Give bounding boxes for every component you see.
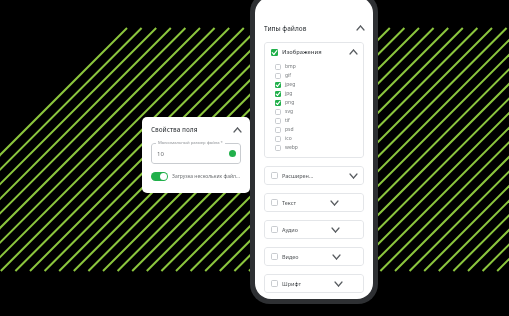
button[interactable]: svg (275, 107, 357, 116)
staticText: bmp (285, 63, 296, 70)
button[interactable]: Расширения при... (264, 166, 364, 185)
button[interactable]: jpg (275, 89, 357, 98)
button[interactable]: bmp (275, 62, 357, 71)
staticText: jpeg (285, 81, 296, 88)
staticText: Типы файлов (264, 24, 307, 33)
staticText: Текст (282, 199, 297, 206)
staticText: Загрузка нескольких файлов (172, 173, 241, 180)
staticText: Изображения (282, 48, 322, 56)
staticText: Расширения при... (282, 172, 316, 179)
button[interactable]: Видео (264, 247, 364, 266)
staticText: gif (285, 72, 292, 79)
staticText: svg (285, 108, 294, 115)
staticText: jpg (285, 90, 293, 97)
staticText: ico (285, 135, 292, 142)
button[interactable]: Изображения (271, 48, 357, 56)
button[interactable]: gif (275, 71, 357, 80)
staticText: Свойства поля (151, 125, 198, 134)
button[interactable]: tif (275, 116, 357, 125)
button[interactable]: Загрузка нескольких файлов (151, 172, 241, 181)
button[interactable]: Шрифт (264, 274, 364, 293)
staticText: tif (285, 117, 290, 124)
button[interactable]: Аудио (264, 220, 364, 239)
button[interactable]: psd (275, 125, 357, 134)
button[interactable]: webp (275, 143, 357, 152)
button[interactable]: Типы файлов (264, 21, 364, 35)
staticText: psd (285, 126, 294, 133)
button[interactable]: Индикатор (229, 150, 236, 157)
staticText: 10 (157, 150, 164, 158)
staticText: Аудио (282, 226, 298, 233)
button[interactable]: ico (275, 134, 357, 143)
staticText: Максимальный размер файла * (158, 140, 223, 146)
staticText: webp (285, 144, 298, 151)
button[interactable]: png (275, 98, 357, 107)
staticText: Видео (282, 253, 299, 260)
staticText: Шрифт (282, 280, 301, 287)
button[interactable]: Текст (264, 193, 364, 212)
button[interactable]: jpeg (275, 80, 357, 89)
button[interactable]: Свойства поля (151, 125, 241, 134)
staticText: png (285, 99, 295, 106)
